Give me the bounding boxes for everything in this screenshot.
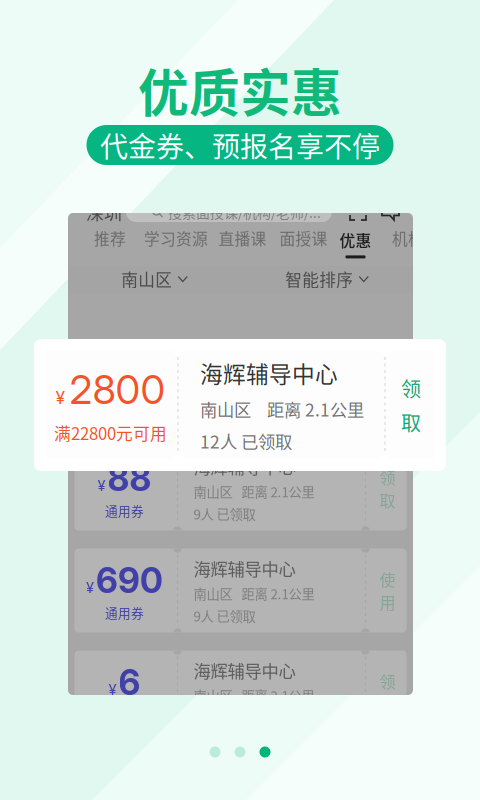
button[interactable]: 深圳: [82, 199, 126, 225]
staticText: Pelephone: [115, 175, 191, 193]
staticText: 南山区: [121, 267, 172, 291]
staticText: 领: [379, 669, 395, 692]
staticText: 南山区 距离 2.1公里: [193, 584, 314, 603]
button[interactable]: ¥: [34, 339, 446, 471]
staticText: 领: [379, 465, 395, 488]
button[interactable]: 直播课: [218, 227, 266, 256]
staticText: ¥: [97, 477, 105, 494]
staticText: 9人 已领取: [193, 606, 255, 625]
staticText: 南山区 距离 2.1公里: [193, 686, 314, 705]
staticText: 海辉辅导中心: [193, 556, 295, 581]
staticText: 取: [379, 488, 395, 512]
staticText: 满22800元可用: [54, 421, 167, 445]
button[interactable]: 机构: [392, 227, 424, 256]
staticText: 海辉辅导中心: [200, 356, 338, 389]
button[interactable]: 面授课: [279, 227, 327, 256]
button[interactable]: 优惠: [339, 229, 371, 258]
staticText: 取: [401, 407, 421, 436]
button[interactable]: Scan code: [349, 203, 367, 221]
staticText: 取: [379, 692, 395, 716]
staticText: 推荐: [94, 227, 126, 249]
button[interactable]: 智能排序: [240, 267, 413, 291]
staticText: 通用券: [105, 603, 144, 622]
staticText: ¥: [86, 579, 94, 596]
staticText: 海辉辅导中心: [193, 454, 295, 479]
staticText: 690: [96, 559, 163, 601]
staticText: 海辉辅导中心: [193, 658, 295, 683]
button[interactable]: 南山区: [68, 267, 240, 291]
staticText: 2800: [69, 365, 165, 414]
staticText: 代金券、预报名享不停: [100, 125, 380, 165]
staticText: 南山区 距离 2.1公里: [193, 482, 314, 501]
button[interactable]: Messages: [381, 203, 400, 220]
staticText: 通用券: [105, 501, 144, 520]
staticText: 使: [379, 567, 395, 590]
staticText: 9人 已领取: [193, 504, 255, 523]
staticText: 用: [379, 590, 395, 614]
button[interactable]: 代金券、预报名享不停: [86, 125, 393, 165]
button[interactable]: 学习资源: [144, 227, 208, 256]
staticText: 直播课: [218, 227, 266, 249]
staticText: 88: [107, 457, 151, 499]
staticText: 智能排序: [285, 267, 353, 291]
staticText: 学习资源: [144, 227, 208, 249]
staticText: 南山区 距离 2.1公里: [200, 396, 364, 421]
staticText: ¥: [55, 387, 65, 408]
staticText: 面授课: [279, 227, 327, 249]
button[interactable]: 搜索面授课/机构/老师/...: [126, 202, 332, 222]
staticText: 6: [118, 661, 140, 703]
staticText: 优惠: [339, 229, 371, 251]
staticText: 领: [401, 373, 421, 402]
staticText: 搜索面授课/机构/老师/...: [168, 202, 321, 222]
button[interactable]: 推荐: [94, 227, 126, 256]
staticText: 机构: [392, 227, 424, 249]
staticText: 12人 已领取: [200, 428, 292, 453]
staticText: 优质实惠: [138, 53, 342, 127]
staticText: ¥: [108, 681, 116, 698]
staticText: 深圳: [86, 199, 122, 225]
